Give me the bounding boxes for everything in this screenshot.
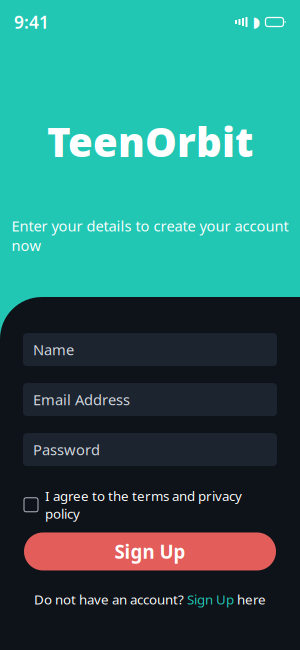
staticText: I agree to the terms and privacy policy (45, 487, 242, 522)
staticText: TeenOrbit (47, 115, 253, 168)
staticText: Password (33, 440, 100, 459)
button[interactable]: I agree to the terms and privacy policy (0, 487, 300, 522)
button[interactable]: Do not have an account? (34, 590, 266, 608)
staticText: 9:41 (14, 10, 49, 33)
staticText: Sign Up (187, 590, 234, 608)
staticText: Enter your details to create your accoun… (11, 216, 288, 255)
staticText: Do not have an account? (34, 590, 184, 608)
staticText: ◗ (252, 14, 260, 30)
staticText: Email Address (33, 390, 130, 409)
staticText: here (237, 590, 266, 608)
staticText: Name (33, 340, 74, 359)
staticText: Sign Up (114, 539, 185, 564)
button[interactable]: Sign Up (24, 532, 276, 570)
